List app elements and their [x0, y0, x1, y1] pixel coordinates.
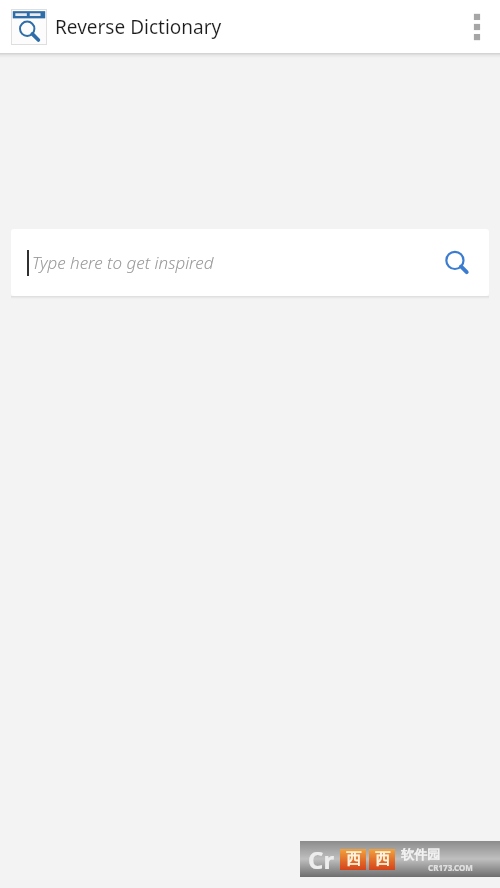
button[interactable]: Reverse Dictionary — [11, 9, 47, 45]
staticText: 软件园 — [401, 846, 440, 862]
staticText: CR173.COM — [401, 862, 500, 873]
staticText: Type here to get inspired — [32, 251, 214, 274]
button[interactable]: More options — [454, 0, 500, 53]
staticText: 西 — [375, 850, 390, 869]
staticText: Reverse Dictionary — [55, 14, 222, 40]
button[interactable]: Search — [434, 240, 480, 286]
button[interactable]: Type here to get inspired — [11, 229, 489, 296]
staticText: Cr — [308, 843, 335, 876]
staticText: 西 — [346, 850, 361, 869]
